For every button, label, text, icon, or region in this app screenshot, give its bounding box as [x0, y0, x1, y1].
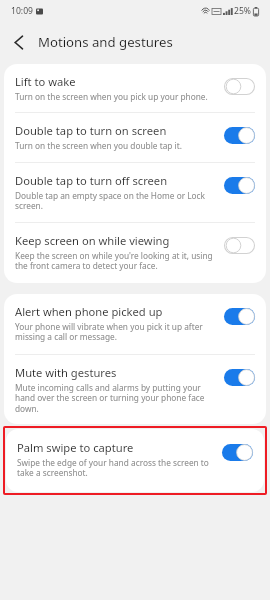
staticText: Turn on the screen when you double tap i… [15, 140, 182, 151]
staticText: Palm swipe to capture [17, 440, 134, 455]
staticText: Lift to wake [15, 74, 76, 89]
staticText: Double tap to turn on screen [15, 123, 167, 138]
button[interactable]: Toggle on [222, 444, 253, 461]
staticText: Alert when phone picked up [15, 304, 163, 319]
button[interactable]: Lift to wake [4, 64, 266, 112]
button[interactable]: Back [0, 23, 38, 61]
staticText: Keep the screen on while you're looking … [15, 250, 218, 272]
button[interactable]: Toggle off [224, 237, 255, 254]
button[interactable]: Toggle on [224, 369, 255, 386]
staticText: Mute incoming calls and alarms by puttin… [15, 382, 218, 415]
staticText: Motions and gestures [38, 33, 173, 51]
button[interactable]: Toggle on [224, 127, 255, 144]
staticText: Swipe the edge of your hand across the s… [17, 457, 216, 479]
button[interactable]: Toggle off [224, 78, 255, 95]
staticText: Turn on the screen when you pick up your… [15, 91, 208, 102]
button[interactable]: Keep screen on while viewing [4, 223, 266, 283]
staticText: Double tap to turn off screen [15, 173, 168, 188]
button[interactable]: Double tap to turn off screen [4, 163, 266, 222]
button[interactable]: Mute with gestures [4, 355, 266, 424]
staticText: 10:09 [11, 5, 33, 17]
staticText: Your phone will vibrate when you pick it… [15, 321, 218, 343]
button[interactable]: Palm swipe to capture [6, 429, 264, 492]
button[interactable]: Toggle on [224, 177, 255, 194]
staticText: 25% [234, 5, 251, 17]
staticText: Keep screen on while viewing [15, 233, 170, 248]
button[interactable]: Alert when phone picked up [4, 294, 266, 354]
button[interactable]: Double tap to turn on screen [4, 113, 266, 162]
staticText: Double tap an empty space on the Home or… [15, 190, 218, 212]
staticText: Mute with gestures [15, 365, 117, 380]
button[interactable]: Toggle on [224, 308, 255, 325]
